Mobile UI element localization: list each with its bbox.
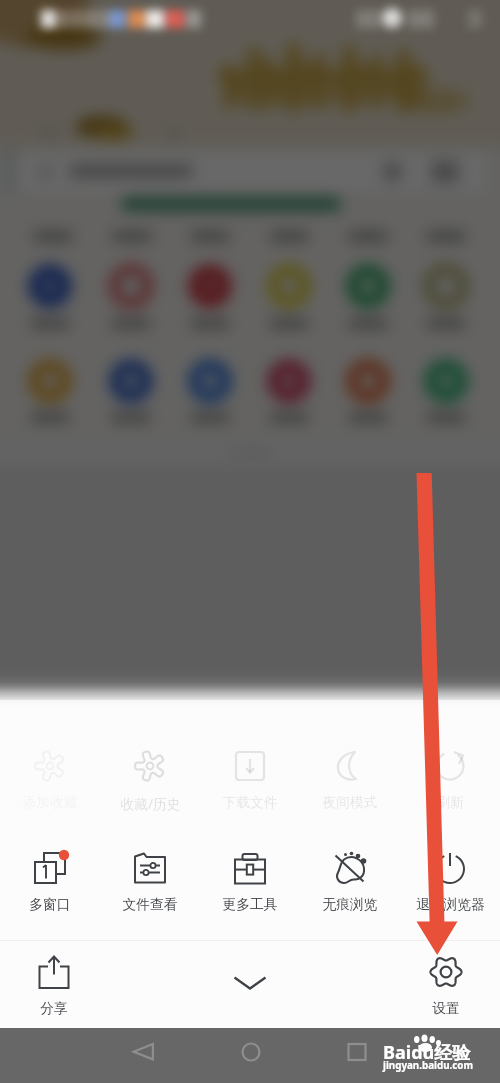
button[interactable]: 下载文件 — [200, 746, 300, 811]
staticText: 退出浏览器 — [416, 896, 485, 913]
staticText: 无痕浏览 — [322, 896, 378, 913]
button[interactable]: 分享 — [4, 952, 104, 1017]
staticText: 刷新 — [436, 794, 464, 811]
staticText: 多窗口 — [29, 896, 71, 913]
button[interactable]: 设置 — [396, 952, 496, 1017]
button[interactable]: Collapse menu — [200, 955, 300, 1011]
button[interactable]: 多窗口 — [0, 848, 100, 913]
staticText: 分享 — [40, 1000, 68, 1017]
button[interactable]: Recent apps — [333, 1028, 381, 1076]
button[interactable]: 文件查看 — [100, 848, 200, 913]
button[interactable]: 退出浏览器 — [400, 848, 500, 913]
staticText: 下载文件 — [222, 794, 278, 811]
staticText: 设置 — [432, 1000, 460, 1017]
staticText: 更多工具 — [222, 896, 278, 913]
button[interactable]: 无痕浏览 — [300, 848, 400, 913]
staticText: 添加收藏 — [22, 794, 78, 811]
staticText: 收藏/历史 — [120, 794, 181, 813]
button[interactable]: 收藏/历史 — [100, 746, 200, 813]
button[interactable]: 更多工具 — [200, 848, 300, 913]
staticText: jingyan.baidu.com — [383, 1059, 474, 1072]
button[interactable]: 刷新 — [400, 746, 500, 811]
staticText: Baidu经验 — [383, 1040, 471, 1065]
staticText: 文件查看 — [122, 896, 178, 913]
button[interactable]: Back — [119, 1027, 167, 1075]
button[interactable]: 夜间模式 — [300, 746, 400, 811]
staticText: 夜间模式 — [322, 794, 378, 811]
button[interactable]: Home — [227, 1028, 275, 1076]
